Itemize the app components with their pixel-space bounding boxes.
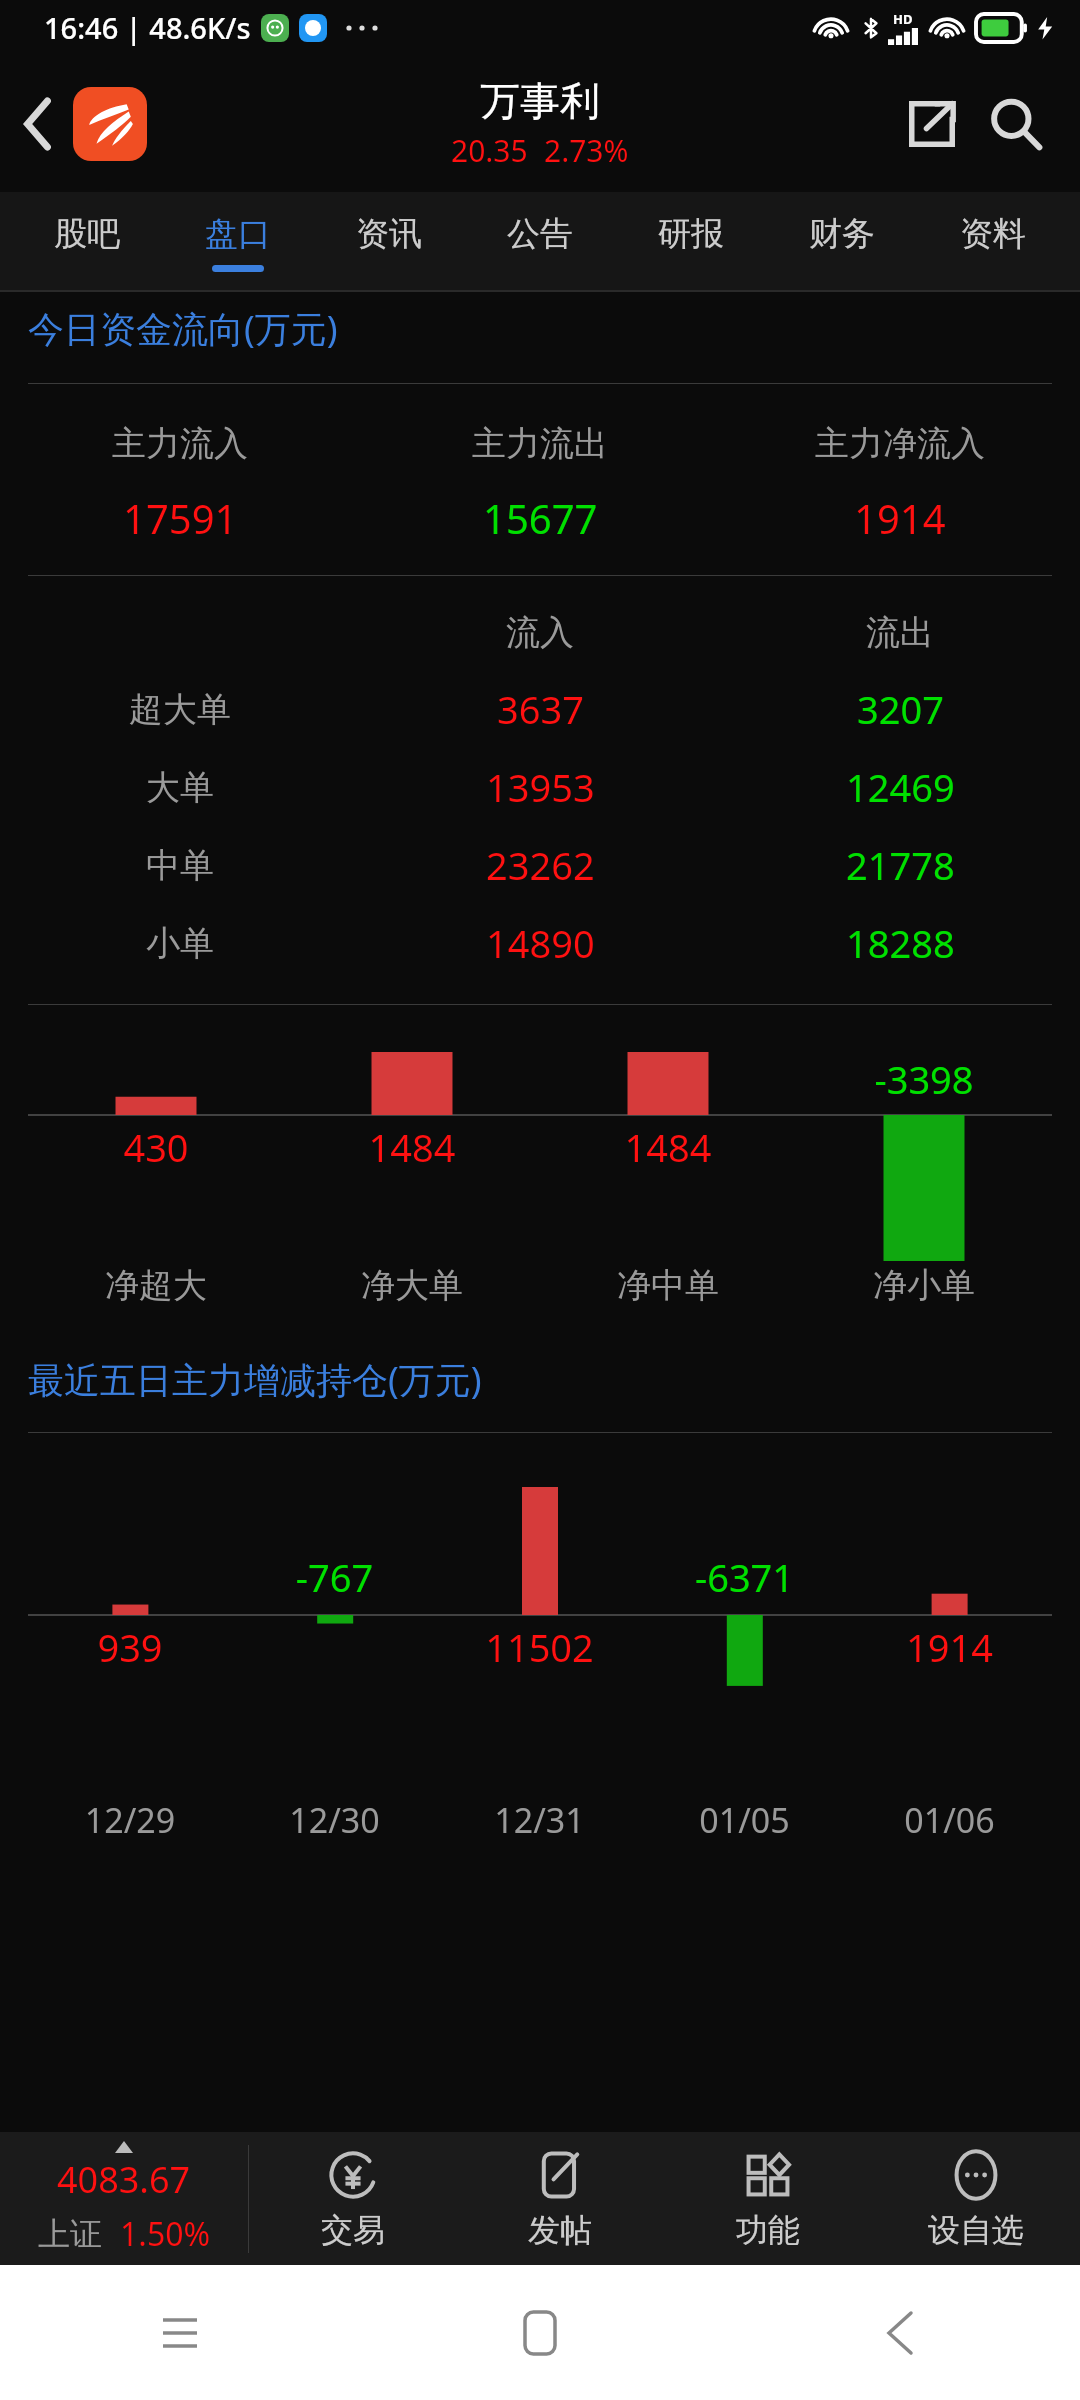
button[interactable]: 财务: [766, 192, 917, 292]
staticText: 盘口: [205, 213, 271, 255]
staticText: 万事利: [480, 76, 600, 126]
staticText: 1914: [854, 491, 946, 545]
staticText: 设自选: [928, 2210, 1024, 2250]
button[interactable]: 大单: [0, 748, 1080, 826]
button[interactable]: 超大单: [0, 670, 1080, 748]
staticText: 4083.67: [57, 2155, 191, 2204]
button[interactable]: 功能: [664, 2132, 872, 2265]
staticText: 今日资金流向(万元): [28, 304, 338, 353]
staticText: 流入: [506, 611, 574, 654]
staticText: 财务: [809, 213, 875, 255]
staticText: 16:46 | 48.6K/s: [44, 8, 251, 47]
button[interactable]: Search: [976, 84, 1056, 164]
staticText: 最近五日主力增减持仓(万元): [28, 1355, 482, 1404]
button[interactable]: Back: [855, 2288, 945, 2378]
button[interactable]: 股吧: [12, 192, 162, 292]
staticText: -767: [232, 1551, 437, 1603]
staticText: 股吧: [54, 213, 120, 255]
staticText: 超大单: [129, 688, 231, 731]
button[interactable]: 研报: [615, 192, 766, 292]
staticText: 23262: [486, 839, 595, 891]
button[interactable]: 公告: [464, 192, 615, 292]
staticText: 15677: [483, 491, 598, 545]
staticText: 12469: [846, 761, 955, 813]
staticText: 资料: [960, 213, 1026, 255]
staticText: 发帖: [528, 2210, 592, 2250]
staticText: 主力净流入: [815, 422, 985, 465]
staticText: 小单: [146, 922, 214, 965]
staticText: 1484: [540, 1121, 796, 1173]
button[interactable]: Share: [894, 86, 970, 162]
staticText: 3637: [497, 683, 584, 735]
staticText: 12/31: [437, 1797, 642, 1843]
staticText: -6371: [642, 1551, 847, 1603]
staticText: 18288: [846, 917, 955, 969]
staticText: 17591: [123, 491, 238, 545]
staticText: 净小单: [796, 1264, 1052, 1307]
staticText: 1.50%: [120, 2212, 211, 2256]
staticText: 12/30: [232, 1797, 437, 1843]
button[interactable]: Home: [495, 2288, 585, 2378]
staticText: 上证: [38, 2214, 102, 2254]
staticText: 主力流入: [112, 422, 248, 465]
button[interactable]: 发帖: [456, 2132, 664, 2265]
staticText: 12/29: [28, 1797, 232, 1843]
staticText: 主力流出: [472, 422, 608, 465]
staticText: 1914: [847, 1621, 1052, 1673]
staticText: 3207: [857, 683, 944, 735]
staticText: 1484: [284, 1121, 540, 1173]
staticText: 2.73%: [544, 130, 629, 171]
staticText: 资讯: [356, 213, 422, 255]
staticText: 净中单: [540, 1264, 796, 1307]
button[interactable]: 主力净流入: [720, 422, 1080, 545]
button[interactable]: 小单: [0, 904, 1080, 982]
button[interactable]: App logo: [73, 87, 147, 161]
button[interactable]: 主力流出: [360, 422, 720, 545]
staticText: 20.35: [451, 130, 528, 171]
staticText: 净超大: [28, 1264, 284, 1307]
staticText: 14890: [486, 917, 595, 969]
staticText: 01/06: [847, 1797, 1052, 1843]
button[interactable]: 交易: [249, 2132, 456, 2265]
staticText: 13953: [486, 761, 595, 813]
staticText: HD: [893, 10, 913, 28]
button[interactable]: 资讯: [313, 192, 464, 292]
button[interactable]: 设自选: [872, 2132, 1080, 2265]
staticText: 430: [28, 1121, 284, 1173]
staticText: 中单: [146, 844, 214, 887]
staticText: 01/05: [642, 1797, 847, 1843]
staticText: 11502: [437, 1621, 642, 1673]
button[interactable]: 盘口: [162, 192, 313, 292]
staticText: 流出: [866, 611, 934, 654]
staticText: 交易: [321, 2210, 385, 2250]
staticText: 功能: [736, 2210, 800, 2250]
button[interactable]: Back: [0, 85, 78, 163]
button[interactable]: 主力流入: [0, 422, 360, 545]
staticText: 939: [28, 1621, 232, 1673]
staticText: -3398: [796, 1053, 1052, 1105]
staticText: 公告: [507, 213, 573, 255]
staticText: 21778: [846, 839, 955, 891]
staticText: 研报: [658, 213, 724, 255]
button[interactable]: 资料: [917, 192, 1068, 292]
button[interactable]: Recents: [135, 2288, 225, 2378]
button[interactable]: 4083.67: [0, 2132, 248, 2265]
staticText: 大单: [146, 766, 214, 809]
button[interactable]: 中单: [0, 826, 1080, 904]
staticText: 净大单: [284, 1264, 540, 1307]
